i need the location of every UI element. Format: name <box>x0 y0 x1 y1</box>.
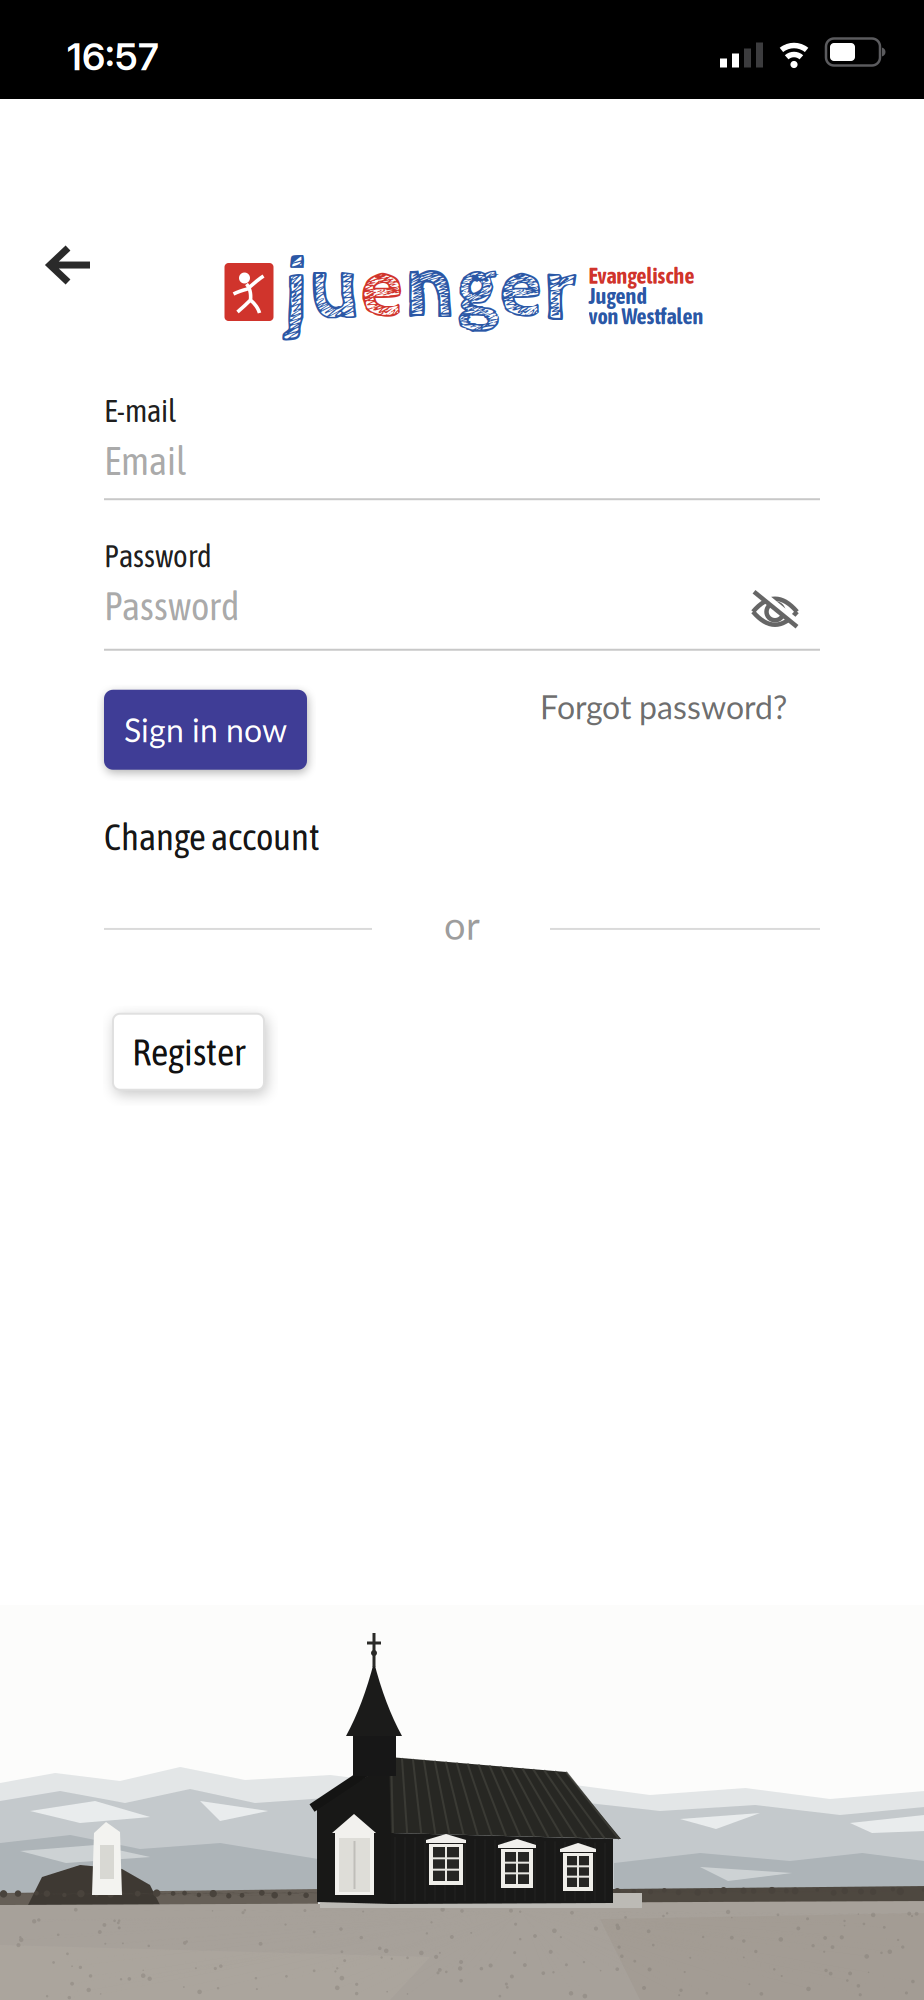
staticText: Password <box>104 538 212 574</box>
staticText: nger <box>403 236 576 342</box>
button[interactable]: Sign in now <box>104 690 307 770</box>
staticText: or <box>444 902 480 948</box>
staticText: Email <box>104 438 186 483</box>
button[interactable]: Back <box>42 241 102 289</box>
button[interactable]: Register <box>113 1014 264 1090</box>
button[interactable]: Forgot password? <box>540 688 787 726</box>
staticText: 16:57 <box>67 33 159 79</box>
staticText: Sign in now <box>124 710 287 749</box>
button[interactable]: Show password <box>752 593 798 631</box>
button[interactable]: Change account <box>104 816 320 858</box>
staticText: von Westfalen <box>588 304 703 329</box>
staticText: Forgot password? <box>540 688 787 726</box>
staticText: Change account <box>104 816 320 858</box>
staticText: ju <box>283 236 359 342</box>
staticText: Evangelische <box>588 263 694 288</box>
staticText: E-mail <box>104 393 176 428</box>
staticText: Password <box>104 584 239 628</box>
staticText: e <box>359 236 403 342</box>
staticText: Jugend <box>588 283 646 309</box>
staticText: Register <box>132 1030 245 1073</box>
